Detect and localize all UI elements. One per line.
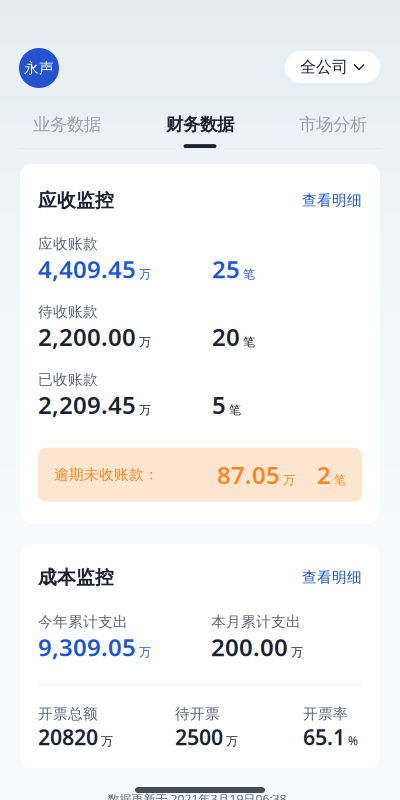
- staticText: 查看明细: [302, 191, 362, 209]
- staticText: 20: [212, 321, 240, 353]
- staticText: 4,409.45: [38, 253, 136, 285]
- staticText: 全公司: [300, 57, 348, 77]
- staticText: 5: [212, 389, 226, 421]
- staticText: 待开票: [175, 705, 220, 723]
- staticText: 25: [212, 253, 240, 285]
- staticText: 万: [226, 734, 238, 749]
- staticText: 2,209.45: [38, 389, 136, 421]
- staticText: 2: [317, 459, 331, 491]
- staticText: 万: [291, 645, 303, 659]
- staticText: 开票总额: [38, 705, 98, 723]
- staticText: 笔: [334, 472, 346, 487]
- staticText: 本月累计支出: [211, 613, 301, 631]
- staticText: 万: [139, 645, 151, 659]
- staticText: 万: [283, 472, 295, 487]
- staticText: 笔: [243, 335, 255, 349]
- staticText: 2500: [175, 723, 223, 751]
- staticText: 笔: [229, 403, 241, 417]
- staticText: 万: [139, 403, 151, 417]
- staticText: 市场分析: [299, 114, 367, 135]
- staticText: 永声: [24, 59, 54, 77]
- staticText: 9,309.05: [38, 631, 136, 663]
- staticText: 200.00: [211, 631, 288, 663]
- button[interactable]: 市场分析: [266, 112, 399, 150]
- staticText: 今年累计支出: [38, 613, 128, 631]
- staticText: 万: [139, 267, 151, 281]
- button[interactable]: 业务数据: [0, 112, 133, 150]
- staticText: 笔: [243, 267, 255, 281]
- staticText: 2,200.00: [38, 321, 136, 353]
- staticText: 查看明细: [302, 568, 362, 586]
- button[interactable]: 财务数据: [133, 112, 266, 150]
- staticText: 应收监控: [38, 189, 114, 212]
- staticText: 逾期未收账款：: [54, 466, 159, 484]
- staticText: 成本监控: [38, 566, 114, 589]
- staticText: 业务数据: [33, 114, 101, 135]
- staticText: 已收账款: [38, 371, 98, 389]
- staticText: 应收账款: [38, 235, 98, 253]
- staticText: 万: [101, 734, 113, 749]
- button[interactable]: 查看明细: [302, 568, 362, 586]
- staticText: 65.1: [303, 723, 345, 751]
- staticText: 数据更新于 2021年3月19日06:38: [107, 791, 286, 800]
- staticText: 20820: [38, 723, 98, 751]
- staticText: %: [348, 733, 358, 749]
- staticText: 万: [139, 335, 151, 349]
- staticText: 待收账款: [38, 303, 98, 321]
- staticText: 87.05: [217, 459, 280, 491]
- button[interactable]: 查看明细: [302, 191, 362, 209]
- button[interactable]: 永声: [19, 48, 59, 88]
- staticText: 开票率: [303, 705, 348, 723]
- staticText: 财务数据: [166, 114, 234, 135]
- button[interactable]: 全公司: [285, 51, 380, 83]
